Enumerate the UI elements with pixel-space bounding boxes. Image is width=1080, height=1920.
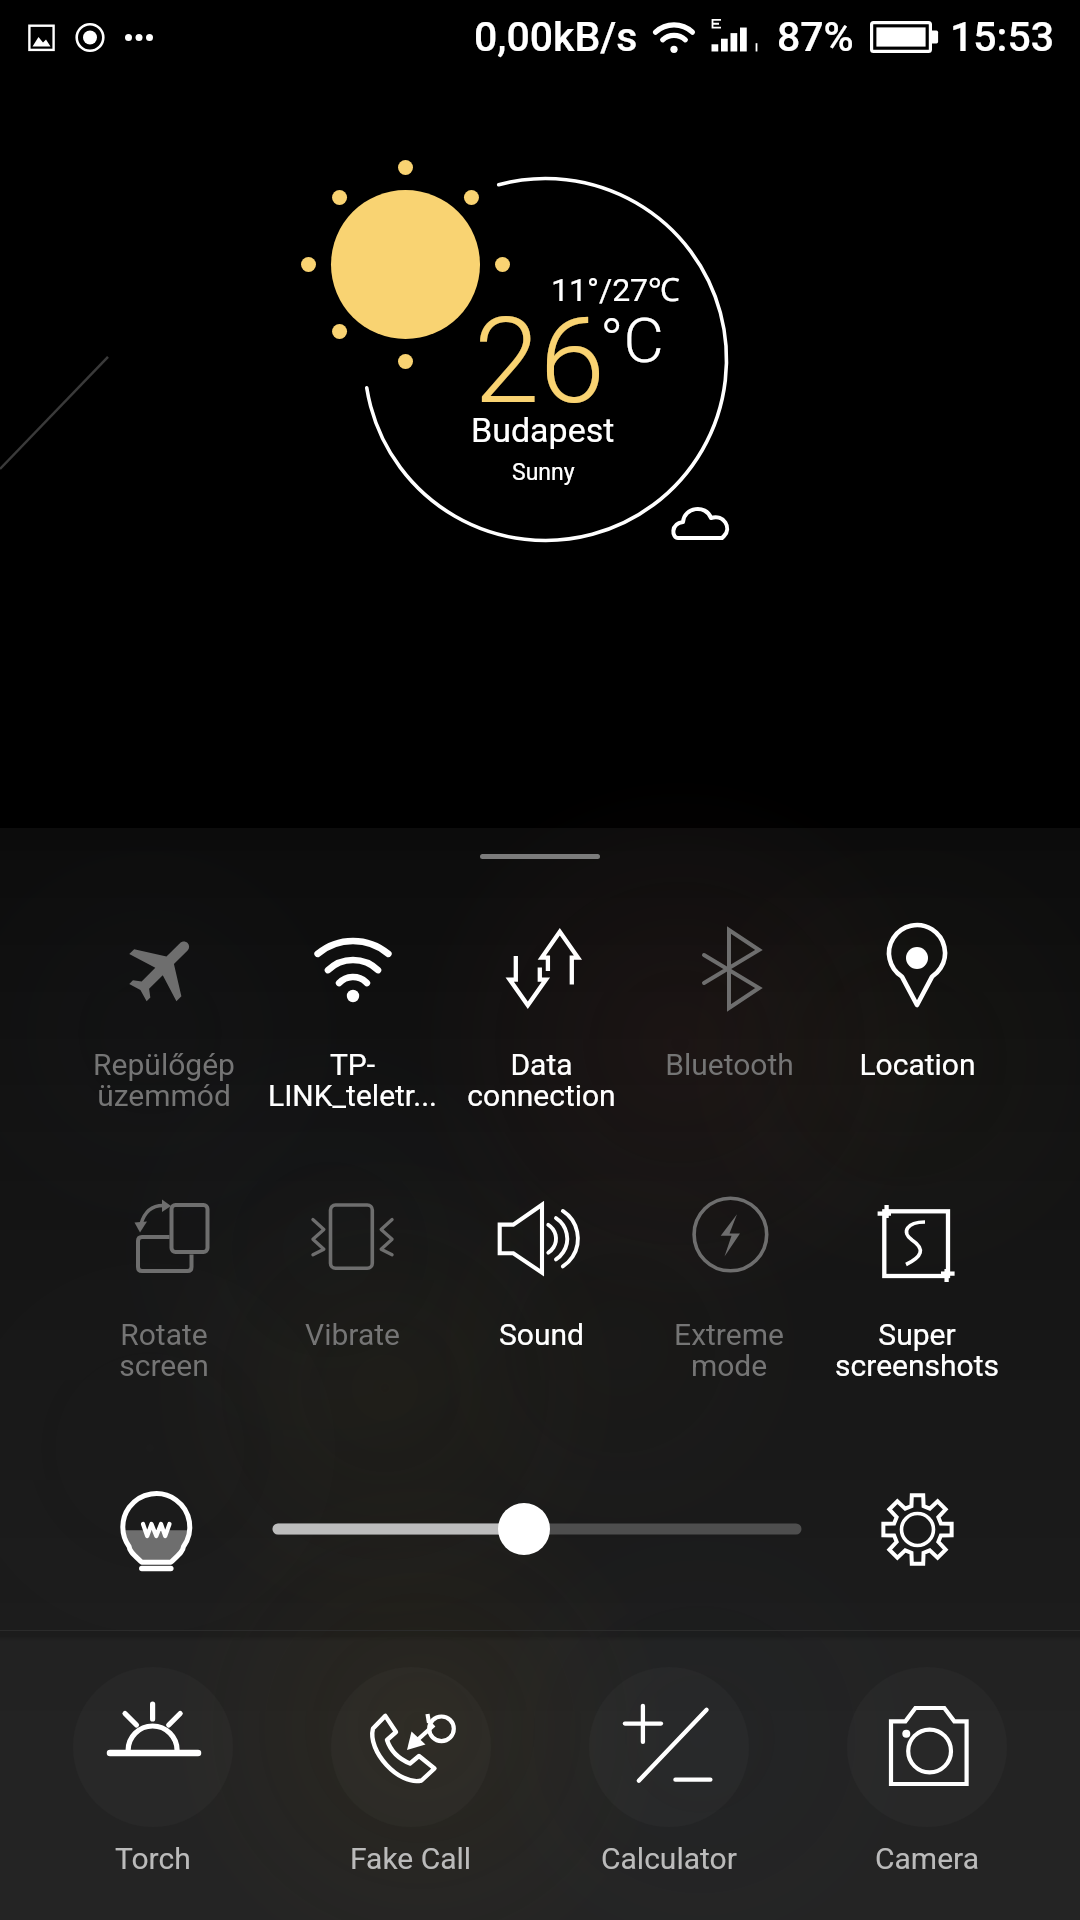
button[interactable]: Brightness slider	[260, 1499, 820, 1559]
button[interactable]: Fake Call	[282, 1667, 540, 1876]
button[interactable]: Data connection	[447, 926, 635, 1126]
button[interactable]: Extreme mode	[635, 1194, 823, 1394]
button[interactable]: Bluetooth	[635, 926, 823, 1126]
button[interactable]: Super screenshots	[823, 1194, 1011, 1394]
staticText: Torch	[115, 1841, 191, 1876]
staticText: Rotate screen	[119, 1317, 209, 1383]
staticText: 0,00kB/s	[474, 13, 638, 61]
staticText: Repülőgép üzemmód	[93, 1047, 235, 1113]
staticText: Camera	[875, 1841, 979, 1876]
staticText: 26	[474, 293, 605, 431]
button[interactable]: Torch	[24, 1667, 282, 1876]
staticText: Data connection	[467, 1047, 616, 1113]
button[interactable]: Calculator	[540, 1667, 798, 1876]
button[interactable]: Auto brightness	[105, 1473, 205, 1573]
staticText: Location	[859, 1047, 976, 1082]
staticText: Vibrate	[305, 1317, 400, 1352]
staticText: 87%	[777, 13, 854, 61]
button[interactable]: Sound	[447, 1194, 635, 1394]
staticText: °C	[600, 304, 664, 377]
staticText: TP- LINK_teletr...	[268, 1047, 437, 1113]
staticText: Sunny	[512, 459, 575, 486]
button[interactable]: Vibrate	[258, 1194, 447, 1394]
staticText: Budapest	[471, 410, 615, 450]
button[interactable]: Settings	[867, 1479, 967, 1579]
staticText: Bluetooth	[665, 1047, 794, 1082]
button[interactable]: TP- LINK_teletr...	[258, 926, 447, 1126]
staticText: 11°/27℃	[551, 267, 680, 311]
button[interactable]: Repülőgép üzemmód	[69, 926, 258, 1126]
staticText: Fake Call	[350, 1841, 472, 1876]
staticText: Sound	[499, 1317, 584, 1352]
button[interactable]: Location	[823, 926, 1011, 1126]
button[interactable]: Camera	[798, 1667, 1056, 1876]
button[interactable]: Rotate screen	[69, 1194, 258, 1394]
staticText: Super screenshots	[835, 1317, 999, 1383]
staticText: Calculator	[601, 1841, 737, 1876]
staticText: Extreme mode	[674, 1317, 784, 1383]
staticText: 15:53	[950, 13, 1055, 61]
